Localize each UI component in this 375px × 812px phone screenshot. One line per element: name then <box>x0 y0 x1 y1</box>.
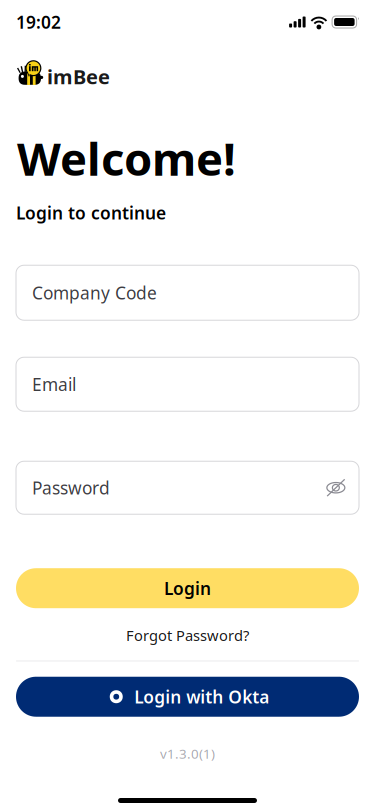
button[interactable]: Company Code <box>16 265 359 320</box>
staticText: Email <box>32 373 76 396</box>
button[interactable]: Show password <box>320 461 352 514</box>
staticText: 19:02 <box>16 10 61 33</box>
staticText: Forgot Password? <box>126 625 249 645</box>
staticText: imBee <box>47 63 110 90</box>
staticText: v1.3.0(1) <box>160 745 215 762</box>
staticText: Password <box>32 476 110 499</box>
button[interactable]: Email <box>16 357 359 411</box>
staticText: Company Code <box>32 281 157 304</box>
button[interactable]: Login <box>16 568 359 608</box>
button[interactable]: Forgot Password? <box>0 624 375 646</box>
staticText: Login with Okta <box>134 685 269 708</box>
button[interactable]: Password <box>16 461 359 514</box>
staticText: Login <box>164 577 211 600</box>
button[interactable]: Login with Okta <box>16 677 359 717</box>
staticText: Login to continue <box>16 201 166 224</box>
staticText: Welcome! <box>17 128 236 188</box>
